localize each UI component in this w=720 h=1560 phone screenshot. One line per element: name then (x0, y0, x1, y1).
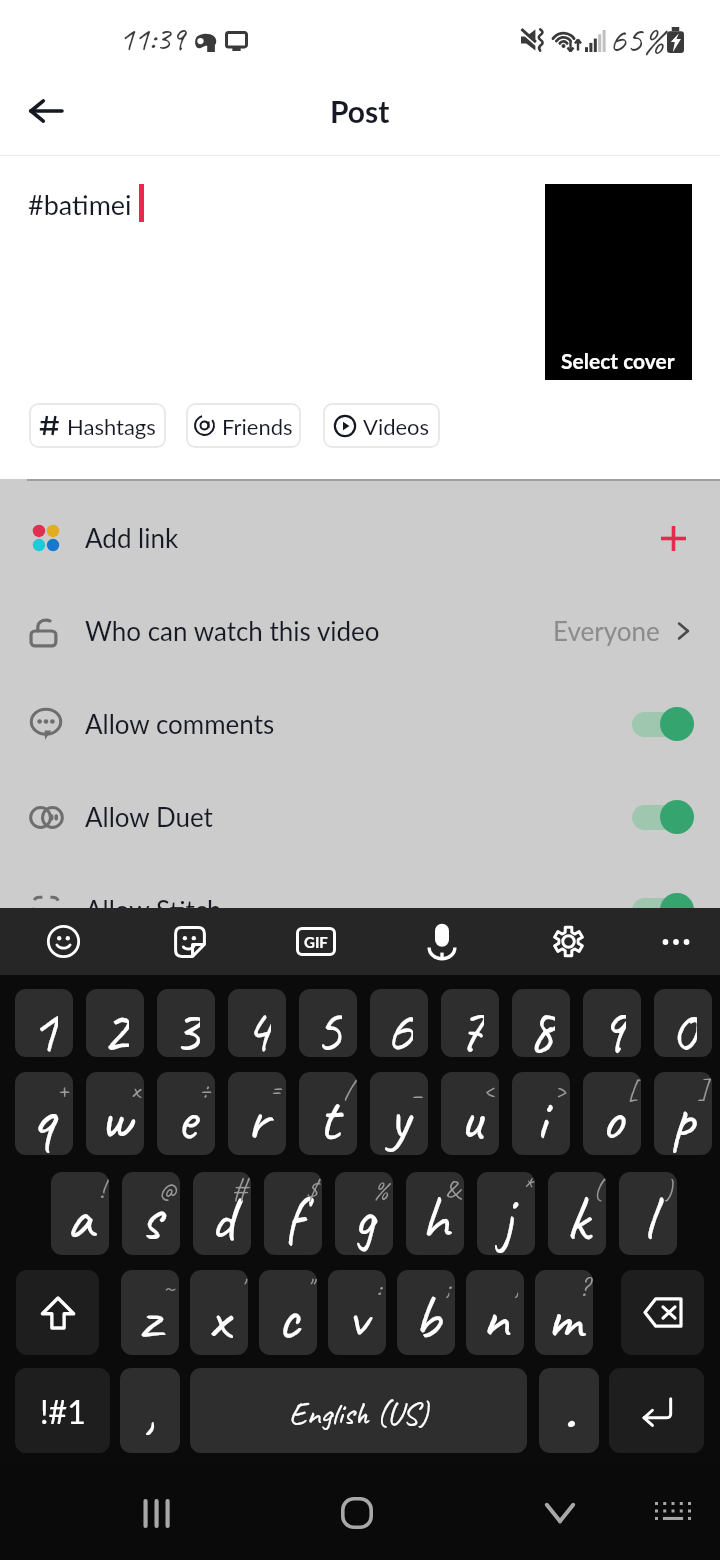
button[interactable]: y (370, 1072, 428, 1155)
staticText: 2 (101, 991, 129, 1057)
button[interactable]: w (86, 1072, 144, 1155)
staticText: 1 (30, 991, 58, 1057)
button[interactable]: Allow comments (0, 677, 720, 770)
staticText: Videos (363, 413, 430, 439)
button[interactable]: p (654, 1072, 712, 1155)
button[interactable]: Home (327, 1483, 387, 1543)
staticText: Select cover (561, 348, 675, 373)
staticText: v (347, 1278, 368, 1355)
button[interactable]: k (548, 1172, 606, 1255)
button[interactable]: v (328, 1270, 386, 1355)
staticText: Allow Duet (85, 801, 213, 832)
button[interactable]: 5 (299, 989, 357, 1057)
button[interactable]: a (51, 1172, 109, 1255)
staticText: i (535, 1079, 547, 1155)
staticText: d (210, 1179, 235, 1255)
button[interactable]: 4 (228, 989, 286, 1057)
button[interactable]: r (228, 1072, 286, 1155)
button[interactable]: b (397, 1270, 455, 1355)
button[interactable]: Allow Duet (0, 770, 720, 863)
button[interactable]: Select cover (545, 184, 692, 380)
button[interactable]: Change keyboard (643, 1483, 703, 1543)
button[interactable]: 7 (441, 989, 499, 1057)
staticText: 6 (385, 991, 413, 1057)
button[interactable]: Backspace (621, 1270, 704, 1355)
staticText: !#1 (40, 1392, 86, 1430)
button[interactable]: o (583, 1072, 641, 1155)
button[interactable]: Videos (323, 403, 440, 448)
staticText: s (140, 1179, 162, 1255)
button[interactable]: t (299, 1072, 357, 1155)
staticText: < (483, 1073, 495, 1106)
button[interactable]: Who can watch this video (0, 584, 720, 677)
button[interactable]: i (512, 1072, 570, 1155)
staticText: " (306, 1271, 313, 1304)
staticText: ! (99, 1173, 105, 1206)
staticText: 9 (598, 991, 626, 1057)
button[interactable]: Add link (0, 491, 720, 584)
button[interactable]: m (535, 1270, 593, 1355)
button[interactable]: s (122, 1172, 180, 1255)
button[interactable]: h (406, 1172, 464, 1255)
staticText: p (671, 1079, 695, 1155)
staticText: & (445, 1173, 460, 1206)
button[interactable]: !#1 (15, 1368, 110, 1453)
button[interactable]: e (157, 1072, 215, 1155)
button[interactable]: Voice input (409, 908, 475, 975)
button[interactable]: z (121, 1270, 179, 1355)
staticText: o (601, 1079, 623, 1155)
staticText: g (353, 1179, 376, 1255)
staticText: y (388, 1079, 410, 1155)
button[interactable]: q (15, 1072, 73, 1155)
staticText: 8 (527, 991, 555, 1057)
button[interactable]: Sticker (157, 908, 223, 975)
staticText: Allow comments (85, 708, 275, 739)
button[interactable]: Friends (186, 403, 301, 448)
button[interactable]: x (190, 1270, 248, 1355)
staticText: ) (664, 1173, 673, 1206)
button[interactable]: Back (18, 83, 74, 139)
button[interactable]: g (335, 1172, 393, 1255)
button[interactable]: Settings (535, 908, 601, 975)
button[interactable]: l (619, 1172, 677, 1255)
button[interactable]: 9 (583, 989, 641, 1057)
button[interactable]: Recents (126, 1483, 186, 1543)
staticText: k (566, 1179, 589, 1255)
button[interactable]: f (264, 1172, 322, 1255)
staticText: Everyone (553, 615, 660, 646)
button[interactable]: GIF (283, 908, 349, 975)
staticText: x (131, 1073, 140, 1106)
staticText: Post (330, 93, 390, 129)
button[interactable]: , (120, 1368, 180, 1453)
button[interactable]: n (466, 1270, 524, 1355)
button[interactable]: Shift (16, 1270, 99, 1355)
button[interactable]: Hide keyboard (530, 1483, 590, 1543)
button[interactable]: Add link (652, 517, 694, 559)
staticText: x (208, 1278, 230, 1355)
button[interactable]: u (441, 1072, 499, 1155)
button[interactable]: j (477, 1172, 535, 1255)
button[interactable]: 8 (512, 989, 570, 1057)
button[interactable]: Enter (609, 1368, 704, 1453)
button[interactable]: Allow Stitch (0, 863, 720, 956)
button[interactable]: More options (643, 908, 709, 975)
button[interactable]: 0 (654, 989, 712, 1057)
button[interactable]: 2 (86, 989, 144, 1057)
button[interactable]: Emoji (30, 908, 96, 975)
staticText: 3 (172, 991, 200, 1057)
staticText: ~ (163, 1271, 175, 1304)
staticText: 65% (609, 16, 665, 63)
staticText: ÷ (199, 1073, 211, 1106)
staticText: 5 (314, 991, 342, 1057)
button[interactable]: d (193, 1172, 251, 1255)
staticText: 7 (456, 991, 484, 1057)
button[interactable]: 3 (157, 989, 215, 1057)
button[interactable]: 1 (15, 989, 73, 1057)
button[interactable]: c (259, 1270, 317, 1355)
staticText: @ (159, 1173, 176, 1206)
button[interactable]: English (US) (190, 1368, 527, 1453)
button[interactable]: . (539, 1368, 599, 1453)
button[interactable]: Hashtags (29, 403, 166, 448)
button[interactable]: 6 (370, 989, 428, 1057)
staticText: c (277, 1278, 300, 1355)
